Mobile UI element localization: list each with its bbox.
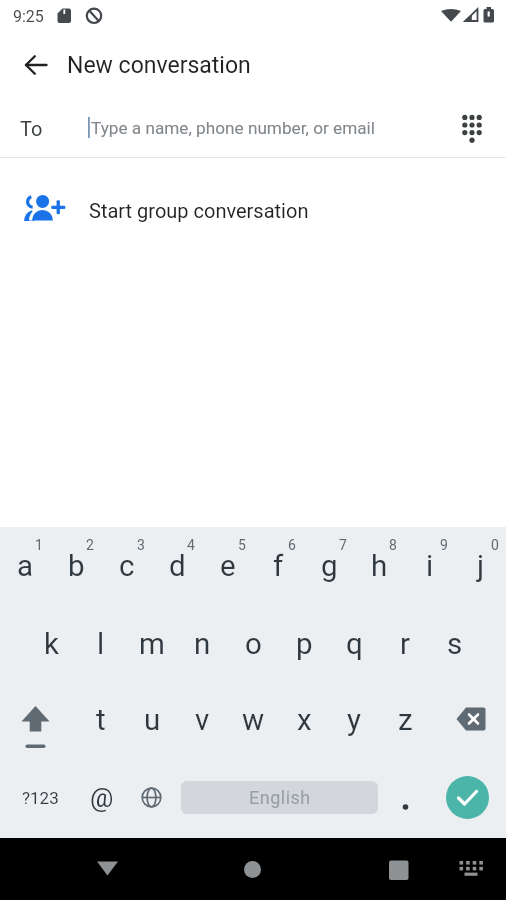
staticText: 8 — [389, 537, 397, 553]
button[interactable] — [177, 682, 228, 759]
staticText: t — [96, 703, 106, 738]
staticText: j — [477, 549, 485, 584]
button[interactable] — [228, 605, 279, 682]
staticText: s — [447, 627, 463, 662]
button[interactable] — [202, 528, 253, 605]
staticText: l — [97, 627, 105, 662]
staticText: u — [144, 703, 161, 738]
staticText: Start group conversation — [89, 199, 309, 222]
button[interactable] — [380, 682, 431, 759]
button[interactable] — [0, 98, 440, 157]
button[interactable] — [329, 682, 380, 759]
staticText: 6 — [288, 537, 296, 553]
staticText: m — [139, 627, 165, 662]
button[interactable] — [278, 682, 329, 759]
button[interactable] — [126, 682, 177, 759]
button[interactable] — [82, 844, 133, 895]
button[interactable] — [76, 605, 127, 682]
staticText: 5 — [238, 537, 246, 553]
staticText: 2 — [86, 537, 94, 553]
button[interactable] — [455, 528, 506, 605]
staticText: 1 — [35, 537, 43, 553]
staticText: x — [297, 703, 312, 738]
button[interactable] — [448, 848, 493, 888]
staticText: New conversation — [67, 52, 251, 79]
button[interactable] — [10, 690, 62, 752]
button[interactable] — [354, 528, 405, 605]
staticText: g — [321, 549, 338, 584]
button[interactable]: English — [181, 781, 378, 814]
button[interactable] — [25, 605, 76, 682]
button[interactable] — [51, 528, 102, 605]
button[interactable] — [228, 682, 279, 759]
staticText: ?123 — [22, 788, 59, 808]
staticText: e — [220, 549, 236, 584]
staticText: 3 — [137, 537, 145, 553]
button[interactable] — [76, 682, 127, 759]
button[interactable] — [253, 528, 304, 605]
staticText: a — [17, 549, 34, 584]
staticText: f — [273, 549, 284, 584]
staticText: r — [400, 627, 410, 662]
button[interactable] — [0, 528, 51, 605]
staticText: w — [242, 703, 265, 738]
staticText: 0 — [491, 537, 499, 553]
staticText: y — [347, 703, 361, 738]
staticText: English — [249, 787, 311, 808]
button[interactable] — [329, 605, 380, 682]
button[interactable] — [430, 605, 481, 682]
staticText: k — [44, 627, 59, 662]
button[interactable] — [126, 772, 177, 823]
staticText: @ — [90, 783, 114, 813]
button[interactable] — [373, 844, 424, 895]
button[interactable] — [152, 528, 203, 605]
staticText: Type a name, phone number, or email — [91, 118, 375, 138]
button[interactable] — [16, 45, 56, 85]
staticText: v — [195, 703, 210, 738]
staticText: q — [346, 627, 363, 662]
button[interactable] — [126, 605, 177, 682]
button[interactable] — [304, 528, 355, 605]
staticText: n — [194, 627, 211, 662]
button[interactable] — [405, 528, 456, 605]
button[interactable] — [278, 605, 329, 682]
staticText: 7 — [339, 537, 347, 553]
button[interactable] — [177, 605, 228, 682]
button[interactable] — [448, 103, 496, 151]
button[interactable] — [76, 772, 127, 823]
staticText: 9:25 — [13, 7, 44, 26]
button[interactable] — [445, 695, 497, 745]
staticText: h — [371, 549, 388, 584]
button[interactable] — [227, 844, 278, 895]
staticText: b — [68, 549, 85, 584]
button[interactable] — [446, 776, 489, 819]
staticText: 9 — [440, 537, 448, 553]
staticText: z — [398, 703, 413, 738]
button[interactable] — [101, 528, 152, 605]
staticText: o — [245, 627, 262, 662]
staticText: c — [119, 549, 135, 584]
button[interactable] — [380, 605, 431, 682]
staticText: p — [296, 627, 313, 662]
button[interactable]: Start group conversation — [0, 174, 506, 246]
staticText: d — [169, 549, 186, 584]
staticText: To — [20, 117, 43, 140]
button[interactable] — [384, 772, 425, 823]
button[interactable] — [14, 772, 65, 823]
staticText: 4 — [187, 537, 195, 553]
staticText: i — [426, 549, 434, 584]
